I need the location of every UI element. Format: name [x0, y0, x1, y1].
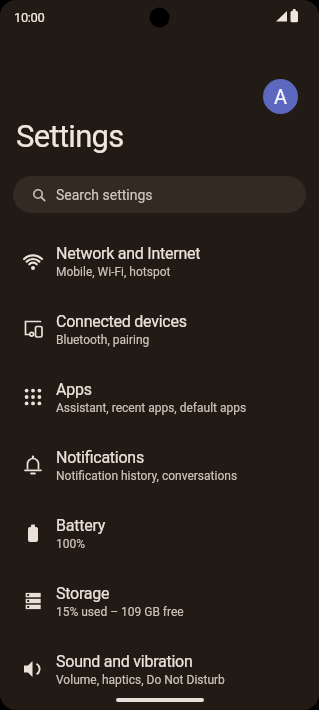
- staticText: Assistant, recent apps, default apps: [56, 401, 247, 415]
- button[interactable]: Search settings: [13, 176, 306, 213]
- staticText: 100%: [56, 537, 86, 551]
- button[interactable]: Sound and vibration: [0, 635, 319, 703]
- staticText: Notifications: [56, 448, 144, 467]
- staticText: Sound and vibration: [56, 652, 193, 671]
- staticText: Volume, haptics, Do Not Disturb: [56, 673, 225, 687]
- staticText: Connected devices: [56, 312, 187, 331]
- staticText: Settings: [16, 118, 124, 154]
- button[interactable]: Apps: [0, 363, 319, 431]
- staticText: 15% used – 109 GB free: [56, 605, 184, 619]
- button[interactable]: Notifications: [0, 431, 319, 499]
- staticText: Storage: [56, 584, 110, 603]
- button[interactable]: Storage: [0, 567, 319, 635]
- button[interactable]: Connected devices: [0, 295, 319, 363]
- button[interactable]: A: [263, 79, 298, 114]
- staticText: Apps: [56, 380, 92, 399]
- staticText: Search settings: [56, 187, 153, 203]
- staticText: A: [274, 85, 288, 108]
- staticText: Notification history, conversations: [56, 469, 238, 483]
- button[interactable]: Network and Internet: [0, 227, 319, 295]
- staticText: Network and Internet: [56, 244, 201, 263]
- staticText: Mobile, Wi-Fi, hotspot: [56, 265, 171, 279]
- staticText: 10:00: [14, 10, 45, 25]
- staticText: Battery: [56, 516, 106, 535]
- button[interactable]: Battery: [0, 499, 319, 567]
- staticText: Bluetooth, pairing: [56, 333, 150, 347]
